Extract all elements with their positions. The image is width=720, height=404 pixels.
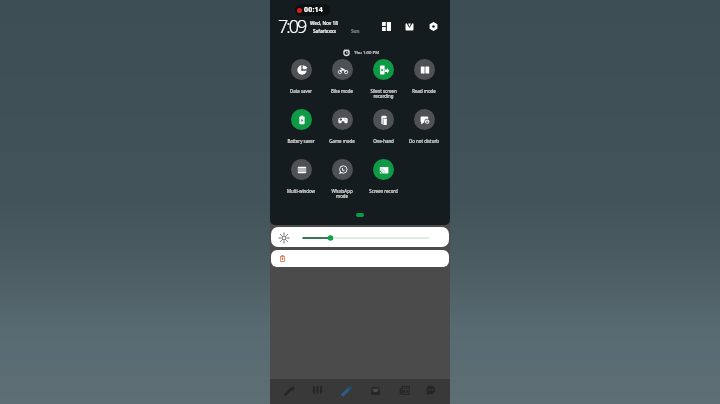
button[interactable]: [271, 250, 449, 267]
button[interactable]: Chat: [421, 381, 439, 399]
button[interactable]: Do not disturb: [403, 109, 445, 144]
staticText: Game mode: [329, 138, 355, 144]
button[interactable]: Battery saver: [280, 109, 322, 144]
staticText: Do not disturb: [409, 138, 439, 144]
button[interactable]: One-hand: [362, 109, 404, 144]
button[interactable]: Inbox: [366, 381, 384, 399]
button[interactable]: Game mode: [321, 109, 363, 144]
button[interactable]: Tools: [308, 381, 326, 399]
staticText: Silent screen recording: [370, 88, 397, 100]
button[interactable]: Multi-window: [280, 159, 322, 194]
button[interactable]: WhatsApp mode: [321, 159, 363, 200]
staticText: Sun: [351, 28, 360, 34]
button[interactable]: [271, 227, 449, 247]
staticText: Safarixxxx: [313, 28, 337, 34]
staticText: 7:09: [278, 14, 306, 39]
button[interactable]: Settings: [428, 21, 439, 32]
staticText: Multi-window: [287, 188, 315, 194]
button[interactable]: Pen: [337, 381, 355, 399]
staticText: Thu 1:00 PM: [354, 49, 380, 55]
staticText: 00:14: [304, 5, 323, 15]
button[interactable]: Inbox: [404, 21, 415, 32]
staticText: Wed, Nov 18: [310, 20, 338, 26]
staticText: WhatsApp mode: [331, 188, 353, 200]
button[interactable]: Brush: [280, 381, 298, 399]
staticText: One-hand: [373, 138, 394, 144]
staticText: Read mode: [412, 88, 436, 94]
staticText: Screen record: [369, 188, 398, 194]
staticText: Data saver: [290, 88, 312, 94]
button[interactable]: Bike mode: [321, 59, 363, 94]
button[interactable]: Read mode: [403, 59, 445, 94]
button[interactable]: 00:14: [295, 4, 330, 16]
button[interactable]: Edit tiles: [381, 21, 392, 32]
button[interactable]: Silent screen recording: [362, 59, 404, 100]
staticText: Bike mode: [331, 88, 353, 94]
button[interactable]: Pages: [395, 381, 413, 399]
button[interactable]: Screen record: [362, 159, 404, 194]
staticText: Battery saver: [287, 138, 315, 144]
button[interactable]: Data saver: [280, 59, 322, 94]
